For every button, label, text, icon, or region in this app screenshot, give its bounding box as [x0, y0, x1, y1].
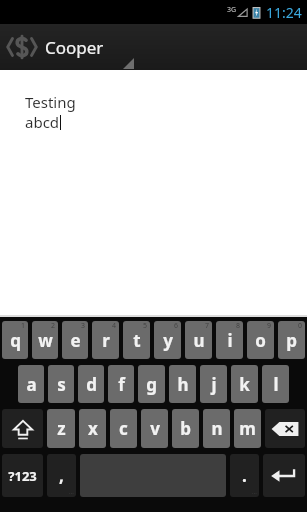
staticText: h [177, 373, 189, 396]
staticText: s [57, 373, 66, 396]
staticText: f [118, 373, 125, 396]
staticText: ?123 [8, 467, 37, 485]
button[interactable]: Enter [263, 454, 305, 497]
button[interactable]: . [230, 454, 259, 497]
button[interactable]: c [110, 409, 137, 448]
button[interactable]: a [18, 365, 44, 403]
staticText: 11:24 [266, 3, 302, 22]
staticText: k [239, 373, 250, 396]
staticText: b [180, 417, 191, 440]
staticText: 4 [112, 321, 117, 331]
staticText: n [211, 417, 223, 440]
button[interactable]: p [278, 321, 305, 359]
staticText: 3G [227, 5, 237, 15]
button[interactable]: m [234, 409, 261, 448]
button[interactable]: App icon [0, 24, 307, 70]
staticText: w [38, 329, 53, 352]
staticText: 5 [143, 321, 148, 331]
staticText: 0 [298, 321, 303, 331]
staticText: z [57, 417, 66, 440]
button[interactable]: k [231, 365, 258, 403]
staticText: p [286, 329, 297, 352]
staticText: o [255, 329, 266, 352]
staticText: . [242, 464, 247, 487]
button[interactable]: j [200, 365, 227, 403]
button[interactable]: h [169, 365, 196, 403]
staticText: e [70, 329, 81, 352]
button[interactable]: g [138, 365, 165, 403]
button[interactable]: Shift [2, 409, 43, 448]
button[interactable]: ?123 [2, 454, 43, 497]
staticText: c [119, 417, 128, 440]
staticText: 3 [81, 321, 86, 331]
button[interactable]: t [123, 321, 150, 359]
staticText: v [150, 417, 160, 440]
button[interactable]: e [62, 321, 88, 359]
staticText: abcd [25, 112, 60, 132]
staticText: a [26, 373, 37, 396]
button[interactable]: w [32, 321, 58, 359]
staticText: y [163, 329, 173, 352]
staticText: l [273, 373, 279, 396]
staticText: t [133, 329, 141, 352]
staticText: j [211, 373, 217, 396]
button[interactable]: Backspace [265, 409, 305, 448]
staticText: Cooper [45, 36, 104, 59]
button[interactable]: n [203, 409, 230, 448]
staticText: m [239, 417, 256, 440]
staticText: 6 [174, 321, 179, 331]
button[interactable]: x [79, 409, 106, 448]
staticText: 9 [267, 321, 272, 331]
button[interactable]: o [247, 321, 274, 359]
button[interactable]: v [141, 409, 168, 448]
staticText: u [193, 329, 205, 352]
other: App icon [5, 30, 39, 64]
staticText: 8 [236, 321, 241, 331]
staticText: 7 [205, 321, 210, 331]
staticText: Testing [25, 92, 76, 112]
staticText: d [86, 373, 97, 396]
staticText: , [59, 464, 64, 487]
button[interactable]: b [172, 409, 199, 448]
button[interactable]: d [78, 365, 104, 403]
button[interactable]: i [216, 321, 243, 359]
staticText: g [146, 373, 157, 396]
button[interactable]: l [262, 365, 289, 403]
staticText: 2 [51, 321, 56, 331]
staticText: x [88, 417, 98, 440]
button[interactable]: u [185, 321, 212, 359]
staticText: i [227, 329, 233, 352]
staticText: 1 [21, 321, 26, 331]
button[interactable]: f [108, 365, 134, 403]
button[interactable]: y [154, 321, 181, 359]
staticText: q [10, 329, 21, 352]
button[interactable]: s [48, 365, 74, 403]
button[interactable]: r [92, 321, 119, 359]
button[interactable]: q [2, 321, 28, 359]
button[interactable]: , [47, 454, 76, 497]
staticText: r [102, 329, 110, 352]
button[interactable]: z [47, 409, 75, 448]
